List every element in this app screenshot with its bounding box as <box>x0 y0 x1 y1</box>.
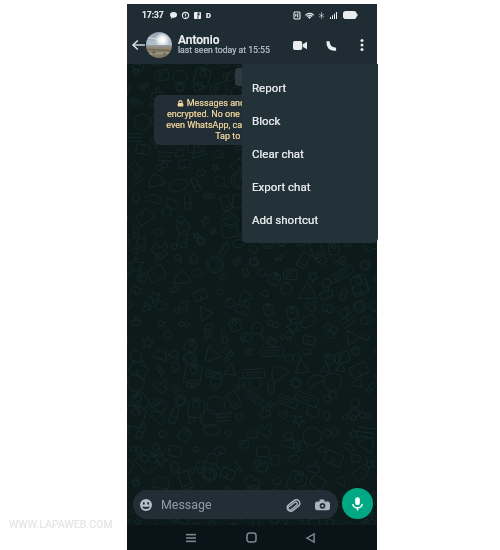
button[interactable]: Home <box>237 525 265 550</box>
staticText: * Messages and calls are end-to-end encr… <box>166 98 337 142</box>
staticText: Message <box>161 497 212 512</box>
staticText: 17:37 <box>142 10 164 20</box>
button[interactable]: Voice message <box>342 488 373 519</box>
button[interactable]: Report <box>242 71 378 104</box>
staticText: WWW.LAPAWEB.COM <box>9 518 113 530</box>
button[interactable]: Block <box>242 104 378 137</box>
staticText: Antonio <box>178 33 220 47</box>
staticText: Export chat <box>252 180 311 193</box>
button[interactable]: Clear chat <box>242 137 378 170</box>
button[interactable]: * Messages and calls are end-to-end encr… <box>154 95 349 145</box>
button[interactable] <box>146 32 172 58</box>
button[interactable]: Attach <box>282 494 304 516</box>
staticText: D <box>206 11 211 20</box>
staticText: Report <box>252 81 287 94</box>
button[interactable]: Recents <box>177 525 205 550</box>
staticText: Block <box>252 114 281 127</box>
button[interactable]: Camera <box>311 494 333 516</box>
staticText: Add shortcut <box>252 213 319 226</box>
button[interactable]: More options <box>347 26 377 64</box>
button[interactable]: Back <box>127 26 146 64</box>
staticText: Clear chat <box>252 147 304 160</box>
button[interactable]: Export chat <box>242 170 378 203</box>
button[interactable]: Message <box>133 490 338 519</box>
staticText: last seen today at 15:55 <box>178 45 270 55</box>
button[interactable]: Video call <box>285 26 315 64</box>
button[interactable]: Call <box>317 26 347 64</box>
button[interactable]: Add shortcut <box>242 203 378 236</box>
button[interactable]: Back <box>296 525 324 550</box>
